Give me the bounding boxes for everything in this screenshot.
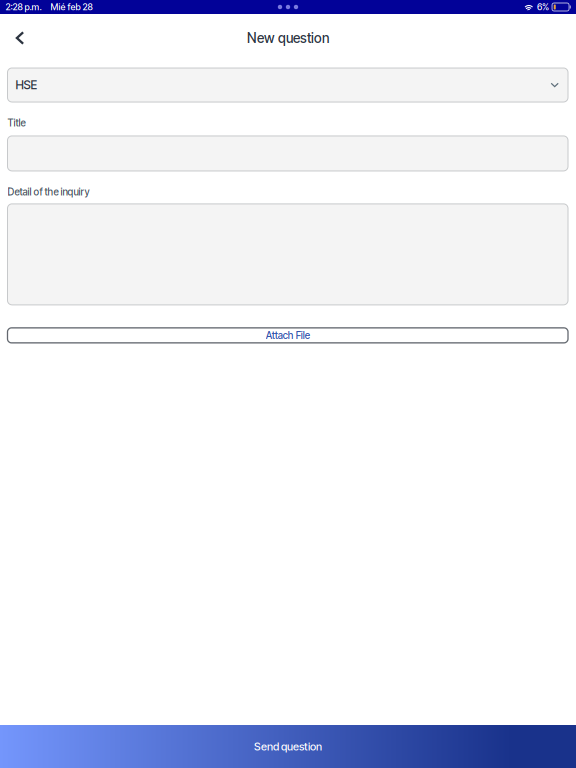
staticText: Send question xyxy=(254,740,322,753)
staticText: 2:28 p.m. xyxy=(5,1,41,12)
button[interactable]: Send question xyxy=(0,725,576,768)
button[interactable]: Back xyxy=(0,25,40,51)
staticText: 6% xyxy=(537,1,549,12)
staticText: New question xyxy=(247,30,329,46)
staticText: Title xyxy=(7,117,25,129)
button[interactable]: Attach File xyxy=(7,328,568,343)
button[interactable]: HSE xyxy=(7,68,568,102)
staticText: HSE xyxy=(15,78,37,92)
staticText: Mié feb 28 xyxy=(50,1,92,12)
staticText: Attach File xyxy=(266,329,310,341)
staticText: Detail of the inquiry xyxy=(7,186,89,198)
